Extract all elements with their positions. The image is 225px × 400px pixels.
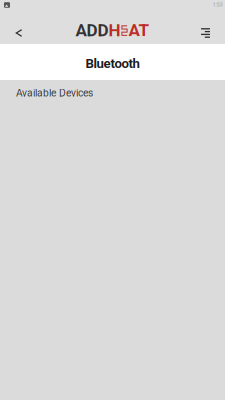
staticText: AT [128,20,149,40]
staticText: ADD [76,20,109,40]
button[interactable]: Sort devices [201,18,225,47]
button[interactable]: Back [0,18,38,47]
staticText: 1:53 [212,1,222,8]
staticText: Bluetooth [85,56,139,71]
staticText: Available Devices [16,87,93,99]
staticText: H [109,20,121,40]
